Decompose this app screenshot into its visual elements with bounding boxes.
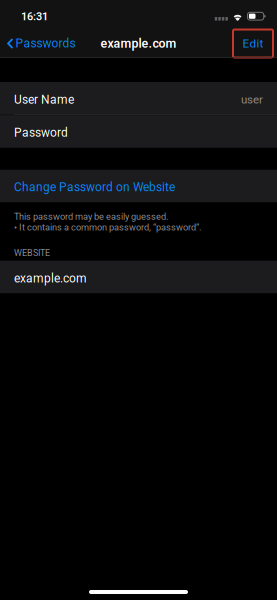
button[interactable]: Passwords [0, 32, 79, 55]
staticText: user [241, 93, 263, 106]
staticText: WEBSITE [14, 248, 50, 258]
button[interactable]: Edit [233, 29, 273, 57]
staticText: example.com [14, 271, 87, 285]
button[interactable]: Password [0, 115, 277, 148]
staticText: Change Password on Website [14, 180, 175, 194]
staticText: User Name [14, 92, 74, 107]
staticText: Passwords [15, 36, 75, 51]
button[interactable]: example.com [0, 261, 277, 293]
staticText: example.com [100, 36, 176, 51]
button[interactable]: User Name [0, 82, 277, 114]
staticText: 16:31 [21, 10, 48, 23]
staticText: • It contains a common password, “passwo… [14, 222, 201, 233]
button[interactable]: Change Password on Website [0, 170, 277, 202]
staticText: Edit [242, 37, 263, 50]
staticText: Password [14, 126, 68, 140]
staticText: This password may be easily guessed. [14, 211, 168, 222]
